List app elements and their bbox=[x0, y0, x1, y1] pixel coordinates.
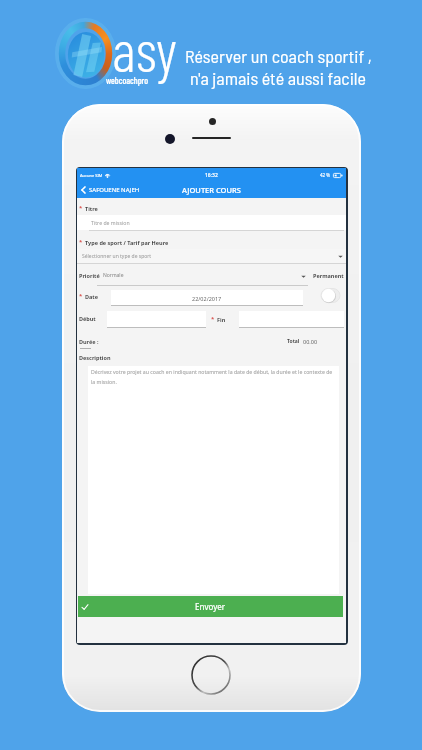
staticText: Titre de mission bbox=[91, 219, 130, 226]
button[interactable]: 22/02/2017 bbox=[111, 290, 303, 306]
button[interactable]: Envoyer bbox=[78, 596, 343, 617]
button[interactable]: Décrivez votre projet au coach en indiqu… bbox=[88, 366, 339, 594]
staticText: Aucune SIM bbox=[80, 173, 103, 178]
staticText: Date bbox=[85, 293, 98, 300]
staticText: * bbox=[79, 238, 83, 246]
staticText: Envoyer bbox=[195, 601, 226, 612]
staticText: Fin bbox=[217, 316, 226, 323]
staticText: webcoachpro bbox=[106, 75, 149, 86]
staticText: Total bbox=[287, 338, 300, 345]
staticText: * bbox=[211, 315, 215, 323]
staticText: asy bbox=[112, 14, 177, 84]
staticText: 22/02/2017 bbox=[192, 295, 222, 302]
staticText: Sélectionner un type de sport bbox=[82, 253, 152, 260]
staticText: * bbox=[79, 204, 83, 212]
staticText: Titre bbox=[85, 205, 98, 212]
staticText: Priorité bbox=[79, 272, 100, 279]
staticText: 42 % bbox=[320, 172, 331, 178]
button[interactable]: Permanent bbox=[321, 288, 340, 303]
staticText: Début bbox=[79, 315, 96, 322]
button[interactable]: SAFOUENE NAJEH bbox=[77, 183, 146, 197]
button[interactable]: Heure de fin bbox=[239, 311, 344, 328]
staticText: Description bbox=[79, 354, 111, 361]
staticText: Durée : bbox=[79, 338, 99, 345]
staticText: AJOUTER COURS bbox=[182, 185, 241, 195]
staticText: SAFOUENE NAJEH bbox=[89, 186, 140, 194]
button[interactable]: Choisir la priorité bbox=[301, 274, 306, 279]
button[interactable]: Home bbox=[191, 655, 231, 695]
staticText: 16:32 bbox=[205, 172, 218, 179]
button[interactable]: Sélectionner un type de sport bbox=[77, 249, 346, 263]
button[interactable]: Heure de début bbox=[107, 311, 206, 328]
staticText: 00.00 bbox=[303, 338, 318, 345]
staticText: Normale bbox=[103, 272, 124, 279]
staticText: Décrivez votre projet au coach en indiqu… bbox=[91, 368, 337, 385]
staticText: Type de sport / Tarif par Heure bbox=[85, 239, 169, 246]
button[interactable]: Titre de mission bbox=[77, 215, 346, 230]
staticText: n'a jamais été aussi facile bbox=[190, 67, 366, 89]
staticText: Permanent bbox=[313, 272, 344, 279]
staticText: * bbox=[79, 292, 83, 300]
staticText: Réserver un coach sportif , bbox=[185, 45, 372, 67]
